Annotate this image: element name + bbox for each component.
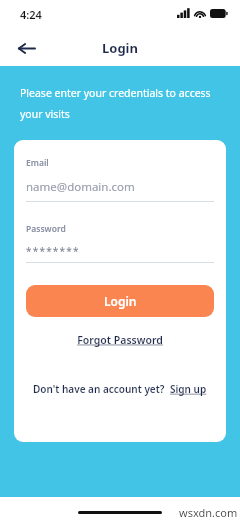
button[interactable]: Sign up [169, 380, 208, 398]
staticText: Login [104, 293, 137, 309]
button[interactable]: Login [26, 285, 214, 317]
staticText: Email [26, 157, 49, 169]
button[interactable]: Back [12, 34, 40, 62]
button[interactable]: Forgot Password [71, 331, 169, 349]
staticText: Please enter your credentials to access … [20, 86, 211, 122]
staticText: Forgot Password [77, 333, 163, 347]
staticText: Password [26, 223, 66, 235]
staticText: Don't have an account yet? [33, 382, 165, 396]
button[interactable]: name@domain.com [26, 179, 214, 202]
staticText: 4:24 [20, 7, 42, 22]
button[interactable]: ******** [26, 244, 214, 263]
staticText: ******** [26, 244, 80, 258]
staticText: Sign up [170, 382, 207, 396]
staticText: wsxdn.com [179, 505, 238, 520]
staticText: Login [102, 39, 138, 57]
staticText: name@domain.com [26, 179, 135, 195]
